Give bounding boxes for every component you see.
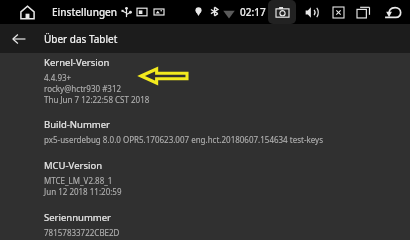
staticText: 4.4.93+ bbox=[44, 72, 72, 83]
staticText: rocky@hctr930 #312 bbox=[44, 83, 122, 94]
other: Bluetooth bbox=[208, 5, 220, 17]
staticText: MTCE_LM_V2.88_1 bbox=[44, 175, 113, 186]
staticText: Über das Tablet bbox=[44, 32, 118, 46]
staticText: MCU-Version bbox=[44, 159, 103, 172]
staticText: Seriennummer bbox=[44, 211, 111, 224]
button[interactable]: Navigate up bbox=[4, 24, 34, 53]
staticText: 78157833722CBE2D bbox=[44, 227, 120, 238]
staticText: px5-userdebug 8.0.0 OPR5.170623.007 eng.… bbox=[44, 134, 324, 145]
staticText: 02:17 bbox=[240, 5, 266, 19]
staticText: Kernel-Version bbox=[44, 56, 110, 69]
button[interactable]: Back bbox=[378, 0, 408, 24]
button[interactable]: Kernel-Version bbox=[0, 54, 410, 105]
button[interactable]: Home bbox=[10, 0, 44, 24]
staticText: Thu Jun 7 12:22:58 CST 2018 bbox=[44, 94, 150, 105]
other: SD card bbox=[153, 6, 165, 18]
staticText: Build-Nummer bbox=[44, 118, 110, 131]
button[interactable]: Screenshot bbox=[268, 0, 296, 24]
other: Location bbox=[193, 6, 204, 17]
button[interactable]: Recent apps bbox=[350, 0, 376, 24]
button[interactable]: Close bbox=[326, 0, 350, 24]
other: USB connected bbox=[119, 5, 133, 19]
other: Cast bbox=[136, 6, 148, 18]
button[interactable]: MCU-Version bbox=[0, 145, 410, 197]
button[interactable]: Seriennummer bbox=[0, 197, 410, 238]
other: Wi-Fi bbox=[222, 7, 235, 20]
staticText: Jun 12 2018 11:20:59 bbox=[44, 186, 122, 197]
button[interactable]: Build-Nummer bbox=[0, 105, 410, 145]
staticText: Einstellungen bbox=[52, 5, 118, 19]
button[interactable]: Volume bbox=[298, 0, 324, 24]
